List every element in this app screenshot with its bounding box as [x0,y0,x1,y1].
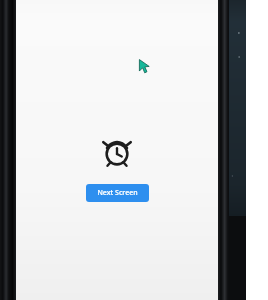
button[interactable]: Next Screen [86,184,149,202]
staticText: Next Screen [97,188,138,198]
other: Alarm clock [102,136,132,166]
